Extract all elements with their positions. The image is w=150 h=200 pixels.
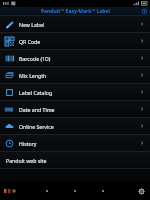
button[interactable]: History	[0, 135, 150, 151]
button[interactable]: Mix Length	[0, 67, 150, 83]
staticText: New Label	[19, 21, 139, 28]
staticText: History	[19, 140, 139, 147]
staticText: Label Catalog	[19, 89, 139, 96]
button[interactable]: Panduit web site	[0, 152, 150, 168]
staticText: Mix Length	[19, 72, 139, 79]
button[interactable]: Label Catalog	[0, 84, 150, 100]
staticText: Online Service	[19, 123, 139, 130]
button[interactable]: Settings	[136, 186, 146, 196]
button[interactable]: Online Service	[0, 118, 150, 134]
button[interactable]: Back	[42, 186, 52, 196]
staticText: QR Code	[19, 38, 139, 45]
staticText: Panduit web site	[6, 157, 145, 164]
button[interactable]: Info	[141, 8, 148, 15]
staticText: Barcode (1D)	[19, 55, 139, 62]
button[interactable]: QR Code	[0, 33, 150, 49]
button[interactable]: New Label	[0, 16, 150, 32]
staticText: Date and Time	[19, 106, 139, 113]
button[interactable]: Home	[70, 186, 80, 196]
button[interactable]: Notifications	[2, 186, 18, 196]
button[interactable]: Barcode (1D)	[0, 50, 150, 66]
staticText: Panduit™ Easy-Mark™ Label	[41, 8, 110, 15]
button[interactable]: Date and Time	[0, 101, 150, 117]
button[interactable]: Recents	[98, 186, 108, 196]
